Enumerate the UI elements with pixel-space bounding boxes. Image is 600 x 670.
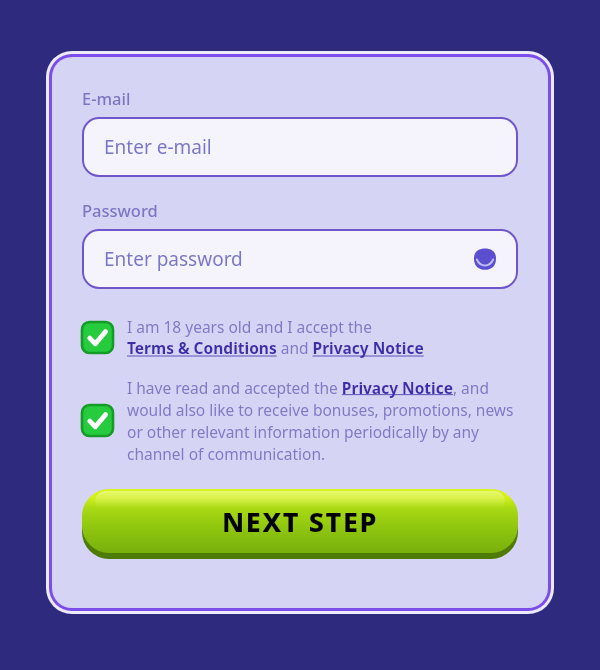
button[interactable]: Checked xyxy=(82,405,113,436)
staticText: I have read and accepted the Privacy Not… xyxy=(127,377,518,464)
staticText: Enter password xyxy=(104,246,243,272)
staticText: NEXT STEP xyxy=(222,503,378,540)
button[interactable]: Show password xyxy=(470,244,500,274)
staticText: Enter e-mail xyxy=(104,134,212,160)
staticText: Password xyxy=(82,199,158,221)
staticText: E-mail xyxy=(82,87,131,109)
button[interactable]: Checked xyxy=(82,322,113,353)
button[interactable]: Enter e-mail xyxy=(84,119,516,175)
button[interactable]: Checked xyxy=(82,377,518,464)
staticText: I am 18 years old and I accept the Terms… xyxy=(127,316,424,359)
button[interactable]: Enter password xyxy=(84,231,516,287)
button[interactable]: Checked xyxy=(82,316,518,359)
button[interactable]: NEXT STEP xyxy=(82,489,518,559)
